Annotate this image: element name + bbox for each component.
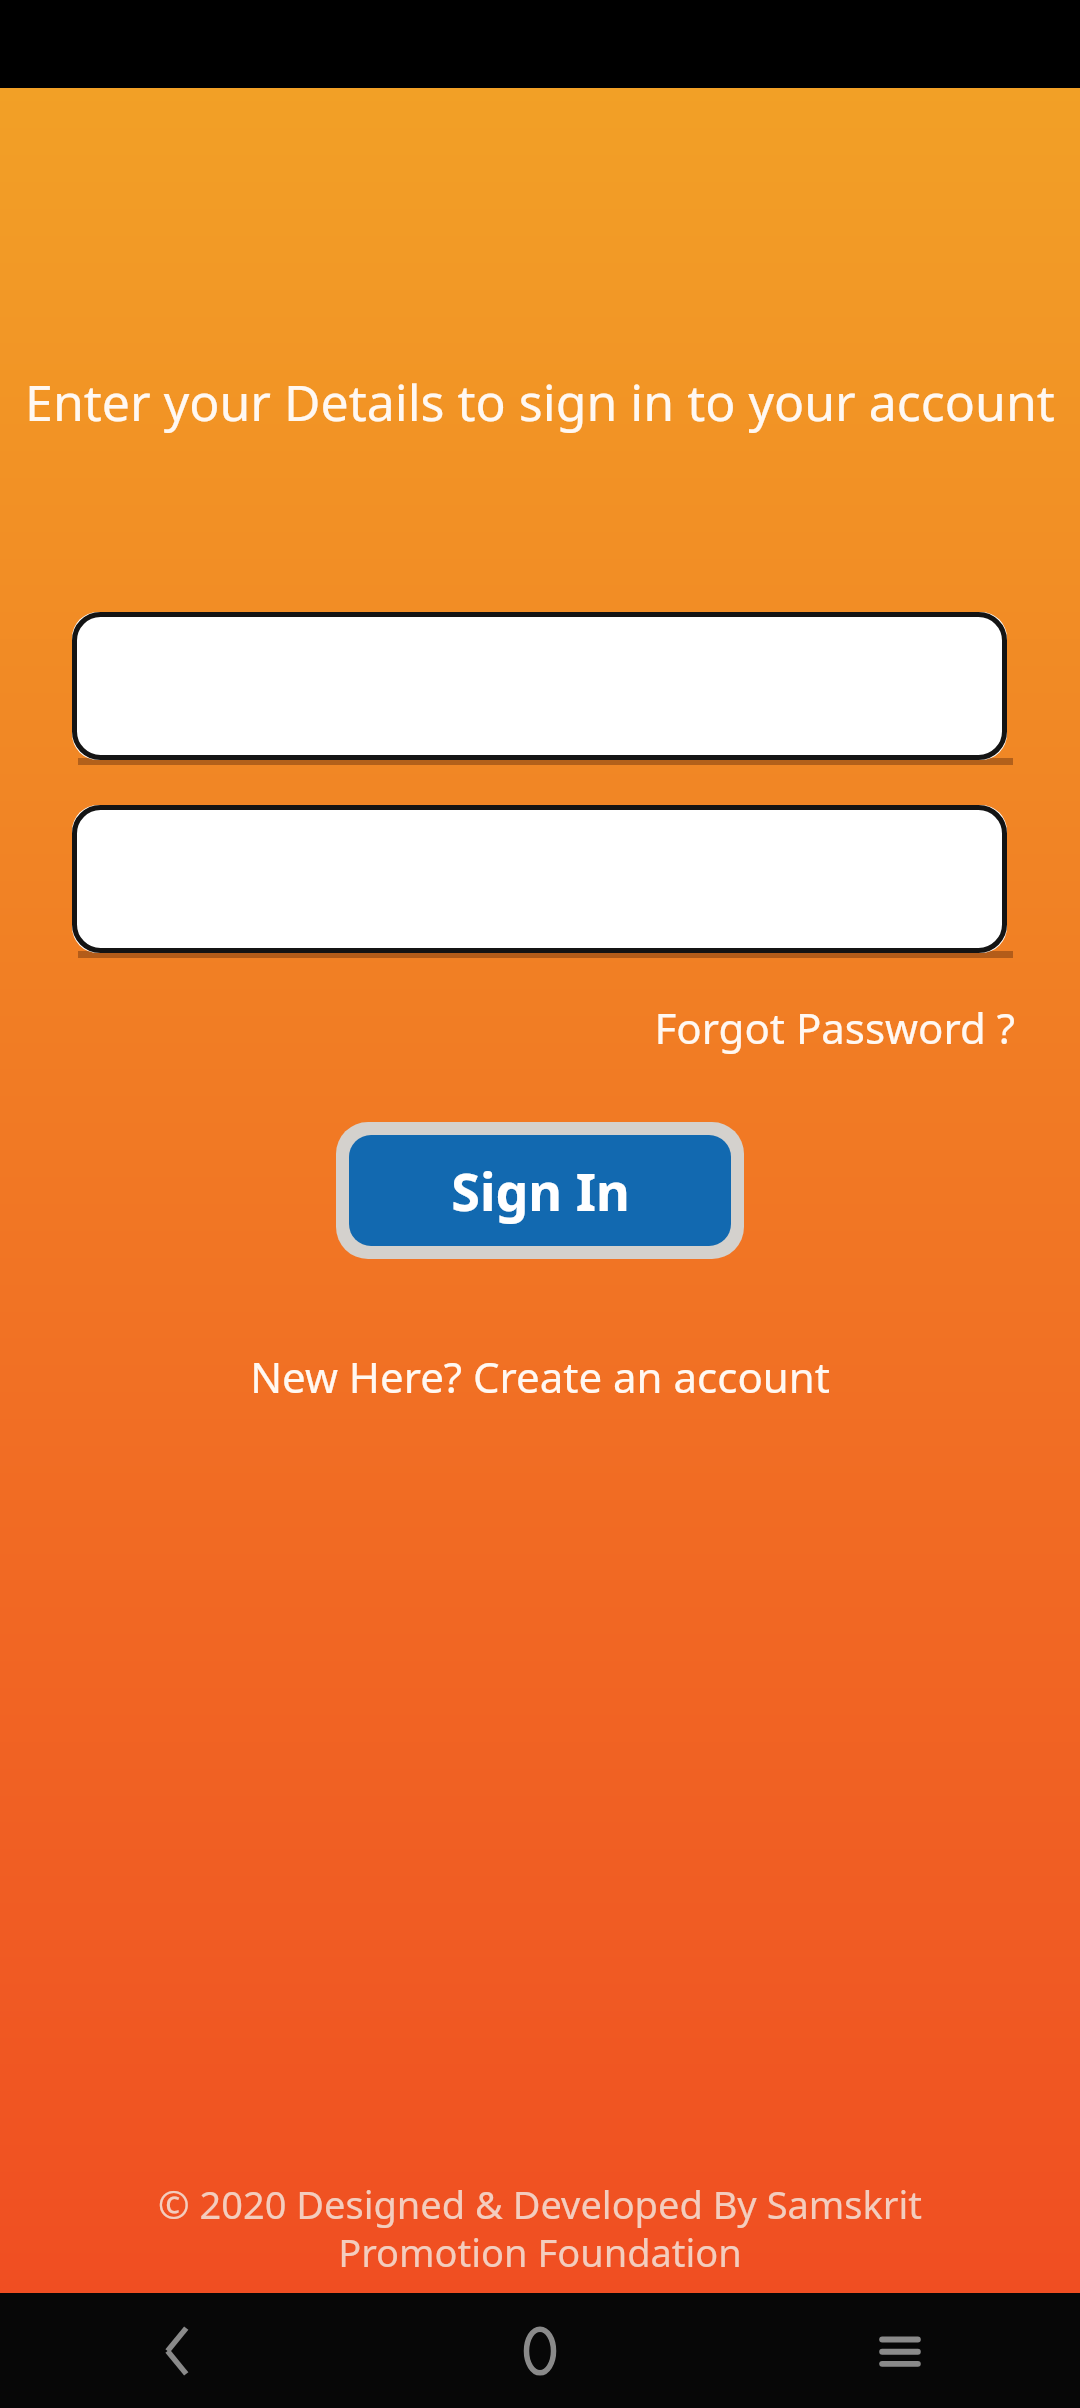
staticText: Sign In bbox=[451, 1155, 630, 1226]
staticText: © 2020 Designed & Developed By Samskrit … bbox=[60, 2178, 1020, 2278]
button[interactable]: Text input field bbox=[72, 805, 1007, 953]
button[interactable]: Sign In bbox=[336, 1122, 744, 1259]
staticText: Forgot Password ? bbox=[654, 999, 1015, 1056]
staticText: Enter your Details to sign in to your ac… bbox=[0, 368, 1080, 436]
button[interactable]: Home bbox=[360, 2293, 720, 2408]
button[interactable]: Back bbox=[0, 2293, 360, 2408]
button[interactable]: Forgot Password ? bbox=[646, 993, 1023, 1062]
staticText: New Here? Create an account bbox=[250, 1348, 830, 1405]
button[interactable]: Recent apps bbox=[720, 2293, 1080, 2408]
button[interactable]: New Here? Create an account bbox=[238, 1340, 842, 1413]
button[interactable]: Text input field bbox=[72, 612, 1007, 760]
